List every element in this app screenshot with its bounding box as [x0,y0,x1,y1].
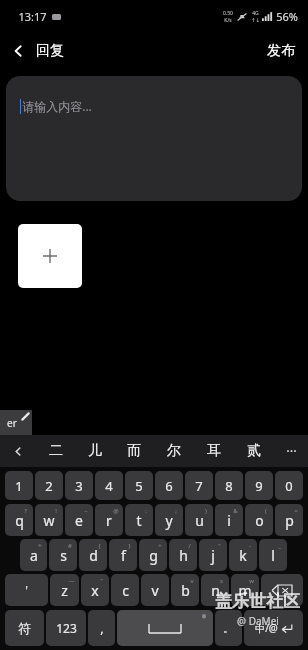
button[interactable]: v [141,574,169,606]
button[interactable]: 123 [46,610,86,646]
staticText: 中/@ [255,621,278,635]
staticText: 8 [225,477,233,495]
staticText: o [255,511,264,530]
button[interactable]: 儿 [75,435,114,467]
button[interactable]: p [275,504,303,536]
button[interactable]: 5 [125,471,153,500]
button[interactable]: w [35,504,63,536]
button[interactable]: 请输入内容... [6,76,302,201]
staticText: ' [25,582,28,598]
button[interactable]: 8 [215,471,243,500]
staticText: * [38,542,42,550]
staticText: 9 [255,477,263,495]
button[interactable]: er [0,410,32,435]
button[interactable]: ' [5,574,48,606]
button[interactable]: n [201,574,229,606]
button[interactable]: Previous [0,435,36,467]
staticText: 耳 [207,442,221,460]
button[interactable]: x [81,574,109,606]
button[interactable]: Space [117,610,213,646]
button[interactable]: y [155,504,183,536]
staticText: u [195,511,204,530]
button[interactable]: 。 [215,610,242,646]
button[interactable]: Back [0,36,74,66]
button[interactable]: 4 [95,471,123,500]
button[interactable]: 9 [245,471,273,500]
button[interactable]: d [79,539,107,571]
button[interactable]: Enter, switch language [244,610,303,646]
button[interactable]: 贰 [234,435,274,467]
staticText: _ [278,542,281,550]
button[interactable]: 二 [36,435,75,467]
staticText: 5 [135,477,143,495]
staticText: 盖乐世社区 [215,591,300,612]
staticText: - [249,542,251,550]
staticText: # [68,542,72,550]
staticText: 4G [252,10,259,17]
button[interactable]: m [231,574,259,606]
staticText: v [151,581,159,600]
button[interactable]: 而 [114,435,154,467]
staticText: ? [24,507,27,515]
staticText: 1 [15,477,23,495]
button[interactable]: u [185,504,213,536]
button[interactable]: More candidates [274,435,308,467]
staticText: z [61,581,68,600]
button[interactable]: , [88,610,115,646]
button[interactable]: 2 [35,471,63,500]
staticText: ··· [286,442,297,460]
staticText: , [100,619,104,637]
staticText: } [128,542,131,550]
button[interactable]: o [245,504,273,536]
staticText: i [227,511,231,530]
button[interactable]: 0 [275,471,303,500]
button[interactable]: k [229,539,257,571]
staticText: v [190,577,194,585]
staticText: 4 [105,477,113,495]
button[interactable]: b [171,574,199,606]
staticText: ” [100,577,103,585]
button[interactable]: 耳 [194,435,234,467]
staticText: ~ [84,507,88,515]
button[interactable]: z [50,574,79,606]
button[interactable]: f [109,539,137,571]
button[interactable]: 7 [185,471,213,500]
button[interactable]: 尔 [154,435,194,467]
staticText: l [271,546,275,565]
staticText: 6 [165,477,173,495]
staticText: = [294,507,298,515]
button[interactable]: Backspace [261,574,303,606]
button[interactable]: s [49,539,77,571]
staticText: g [149,546,158,565]
button[interactable]: g [139,539,167,571]
staticText: h [179,546,188,565]
staticText: " [218,542,221,550]
button[interactable]: t [125,504,153,536]
button[interactable]: h [169,539,197,571]
button[interactable]: j [199,539,227,571]
button[interactable]: q [5,504,33,536]
staticText: c [122,581,129,600]
button[interactable]: 1 [5,471,33,500]
button[interactable]: 3 [65,471,93,500]
staticText: m [238,581,252,600]
button[interactable]: a [20,539,47,571]
button[interactable]: 6 [155,471,183,500]
staticText: ( [265,507,267,515]
staticText: w [43,511,55,530]
staticText: 尔 [167,442,181,460]
button[interactable]: Add image [18,224,82,288]
button[interactable]: 发布 [254,34,308,68]
staticText: j [211,546,215,565]
button[interactable]: i [215,504,243,536]
button[interactable]: e [65,504,93,536]
button[interactable]: r [95,504,123,536]
button[interactable]: c [111,574,139,606]
staticText: x [91,581,99,600]
staticText: { [98,542,101,550]
button[interactable]: l [259,539,287,571]
button[interactable]: 符 [5,610,44,646]
staticText: @ DaMei [237,614,279,628]
staticText: s [60,546,67,565]
staticText: d [89,546,98,565]
